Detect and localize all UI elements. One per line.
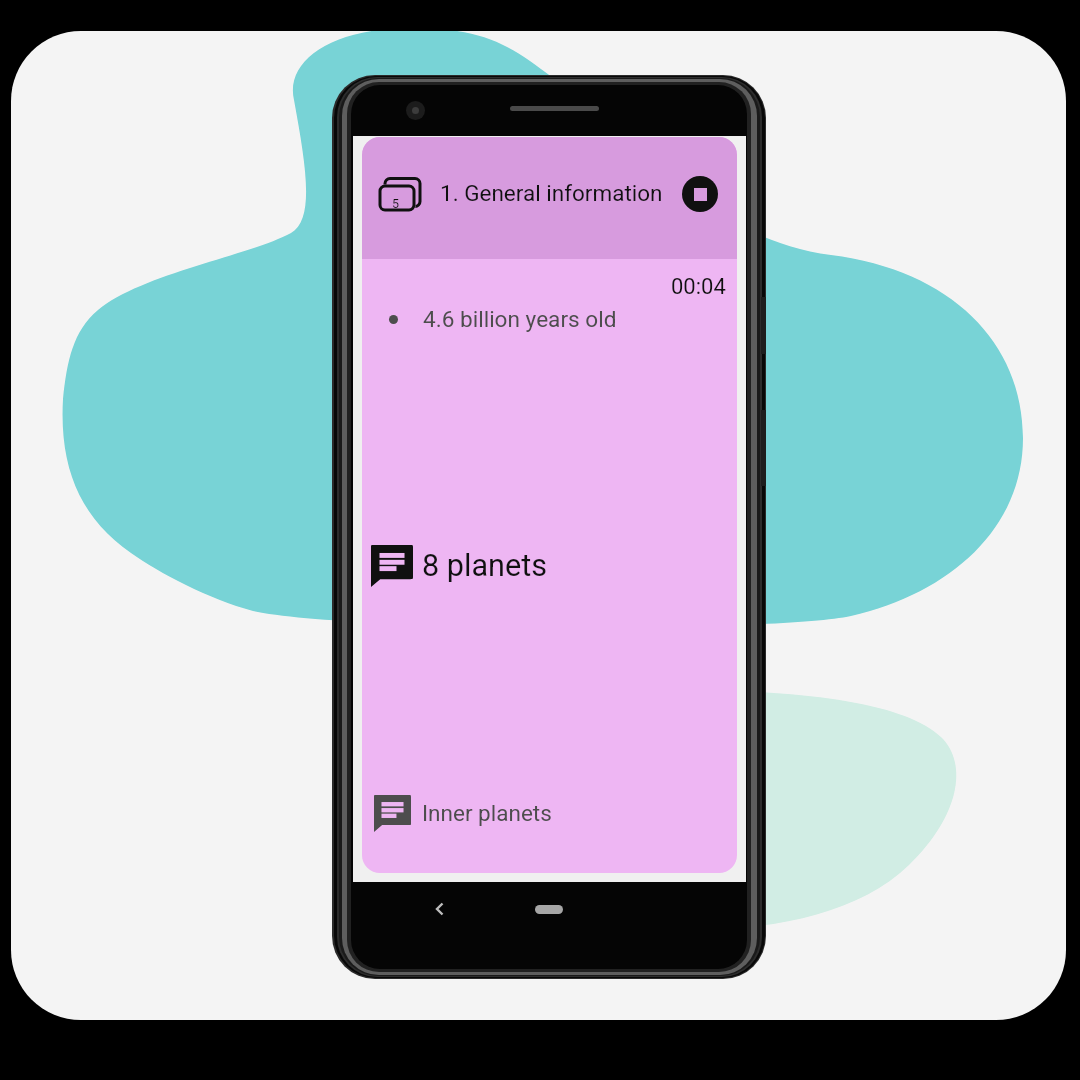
staticText: 5 (392, 196, 400, 211)
button[interactable]: Back (353, 882, 746, 948)
staticText: 00:04 (671, 274, 726, 300)
button[interactable]: 5 (362, 137, 737, 259)
staticText: 1. General information (440, 180, 663, 206)
button[interactable]: Stop (682, 176, 718, 212)
other: Back (353, 882, 746, 948)
staticText: 4.6 billion years old (423, 306, 617, 332)
staticText: Inner planets (422, 800, 552, 826)
staticText: 8 planets (422, 548, 547, 584)
button[interactable]: Inner planets (366, 787, 566, 837)
button[interactable]: 8 planets (366, 537, 566, 593)
